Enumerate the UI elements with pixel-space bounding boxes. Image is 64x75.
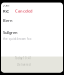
staticText: Bern (3, 18, 12, 23)
staticText: Today 10:41 (15, 56, 32, 60)
staticText: 9:41 (3, 4, 10, 7)
staticText: Canceled (15, 8, 33, 14)
staticText: the quick brown fox (3, 37, 31, 41)
staticText: Delivered (17, 63, 31, 66)
staticText: Sullgren (3, 30, 17, 35)
staticText: Re: (3, 8, 9, 14)
